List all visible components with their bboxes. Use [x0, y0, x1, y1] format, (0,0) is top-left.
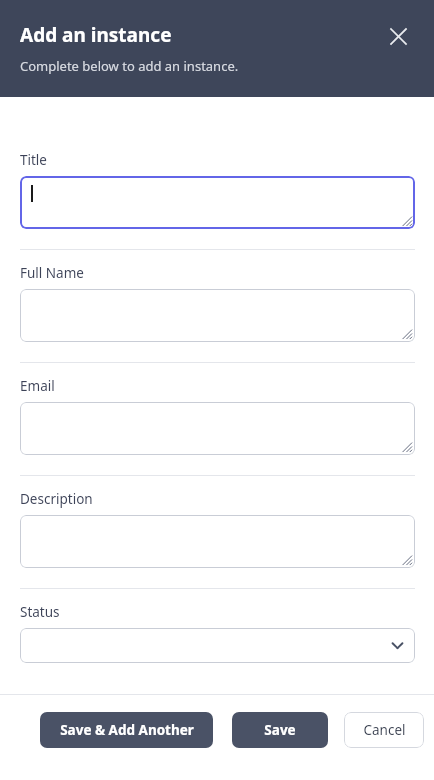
button[interactable]: Status dropdown [20, 628, 415, 663]
staticText: Full Name [20, 264, 84, 282]
button[interactable] [20, 402, 415, 455]
staticText: Email [20, 377, 55, 395]
staticText: Status [20, 603, 60, 621]
button[interactable] [20, 176, 415, 229]
staticText: Save [264, 721, 296, 739]
button[interactable]: Save [232, 712, 328, 748]
button[interactable] [20, 515, 415, 568]
button[interactable]: Close [382, 20, 414, 52]
button[interactable]: Cancel [344, 712, 424, 748]
staticText: Complete below to add an instance. [20, 57, 239, 75]
staticText: Description [20, 490, 93, 508]
button[interactable] [20, 289, 415, 342]
staticText: Add an instance [20, 22, 172, 48]
staticText: Cancel [363, 721, 406, 739]
staticText: Save & Add Another [60, 721, 194, 739]
button[interactable]: Save & Add Another [40, 712, 213, 748]
staticText: Title [20, 151, 47, 169]
